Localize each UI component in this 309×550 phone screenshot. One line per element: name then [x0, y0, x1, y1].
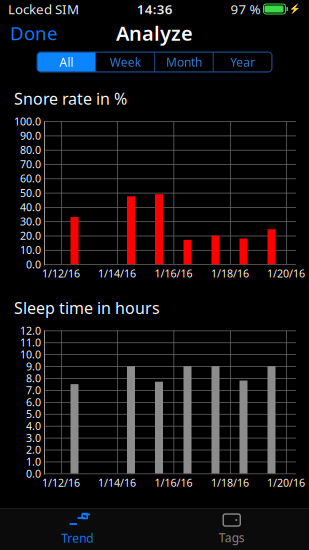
staticText: 1/18/16	[211, 475, 249, 490]
staticText: 100.0	[14, 114, 41, 128]
button[interactable]: Year	[213, 52, 272, 72]
staticText: 1/20/16	[267, 475, 305, 490]
staticText: Week	[110, 54, 141, 70]
staticText: 20.0	[20, 229, 41, 243]
staticText: 40.0	[20, 200, 41, 214]
button[interactable]: Week	[96, 52, 155, 72]
staticText: 1/14/16	[98, 266, 136, 280]
staticText: 3.0	[26, 431, 41, 445]
staticText: 7.0	[26, 383, 41, 397]
staticText: 1/18/16	[211, 266, 249, 280]
button[interactable]: Trend	[0, 509, 154, 550]
staticText: 11.0	[20, 335, 41, 349]
staticText: 10.0	[20, 243, 41, 257]
staticText: 10.0	[20, 347, 41, 361]
staticText: 1/16/16	[154, 475, 192, 490]
staticText: 1/20/16	[267, 266, 305, 280]
staticText: 80.0	[20, 143, 41, 157]
button[interactable]: All	[37, 52, 96, 72]
button[interactable]: Month	[154, 52, 213, 72]
staticText: Year	[230, 54, 255, 70]
staticText: Trend	[61, 530, 93, 546]
staticText: 1/16/16	[154, 266, 192, 280]
staticText: 6.0	[26, 395, 41, 409]
staticText: ⚡	[289, 4, 301, 14]
staticText: Month	[166, 54, 202, 70]
button[interactable]: Tags	[154, 509, 309, 550]
staticText: 97 %	[230, 0, 260, 18]
staticText: 2.0	[26, 443, 41, 457]
staticText: 1/12/16	[42, 475, 80, 490]
button[interactable]: Done	[0, 15, 68, 51]
staticText: 90.0	[20, 128, 41, 143]
staticText: 30.0	[20, 214, 41, 228]
staticText: 0.0	[26, 466, 41, 481]
staticText: 4.0	[26, 419, 41, 433]
staticText: 70.0	[20, 157, 41, 171]
staticText: All	[59, 54, 73, 70]
staticText: 60.0	[20, 171, 41, 186]
staticText: 12.0	[20, 323, 41, 338]
staticText: 1/14/16	[98, 475, 136, 490]
staticText: 9.0	[26, 359, 41, 373]
staticText: Analyze	[116, 20, 193, 46]
staticText: 14:36	[137, 0, 173, 18]
staticText: Locked SIM	[8, 0, 79, 18]
staticText: 1/12/16	[42, 266, 80, 280]
staticText: Tags	[219, 529, 245, 545]
staticText: 0.0	[26, 257, 41, 271]
staticText: 1.0	[26, 454, 41, 469]
staticText: Sleep time in hours	[14, 297, 160, 318]
staticText: 50.0	[20, 186, 41, 200]
staticText: 8.0	[26, 371, 41, 385]
staticText: Done	[10, 21, 58, 45]
staticText: Snore rate in %	[14, 88, 127, 109]
staticText: 5.0	[26, 407, 41, 421]
